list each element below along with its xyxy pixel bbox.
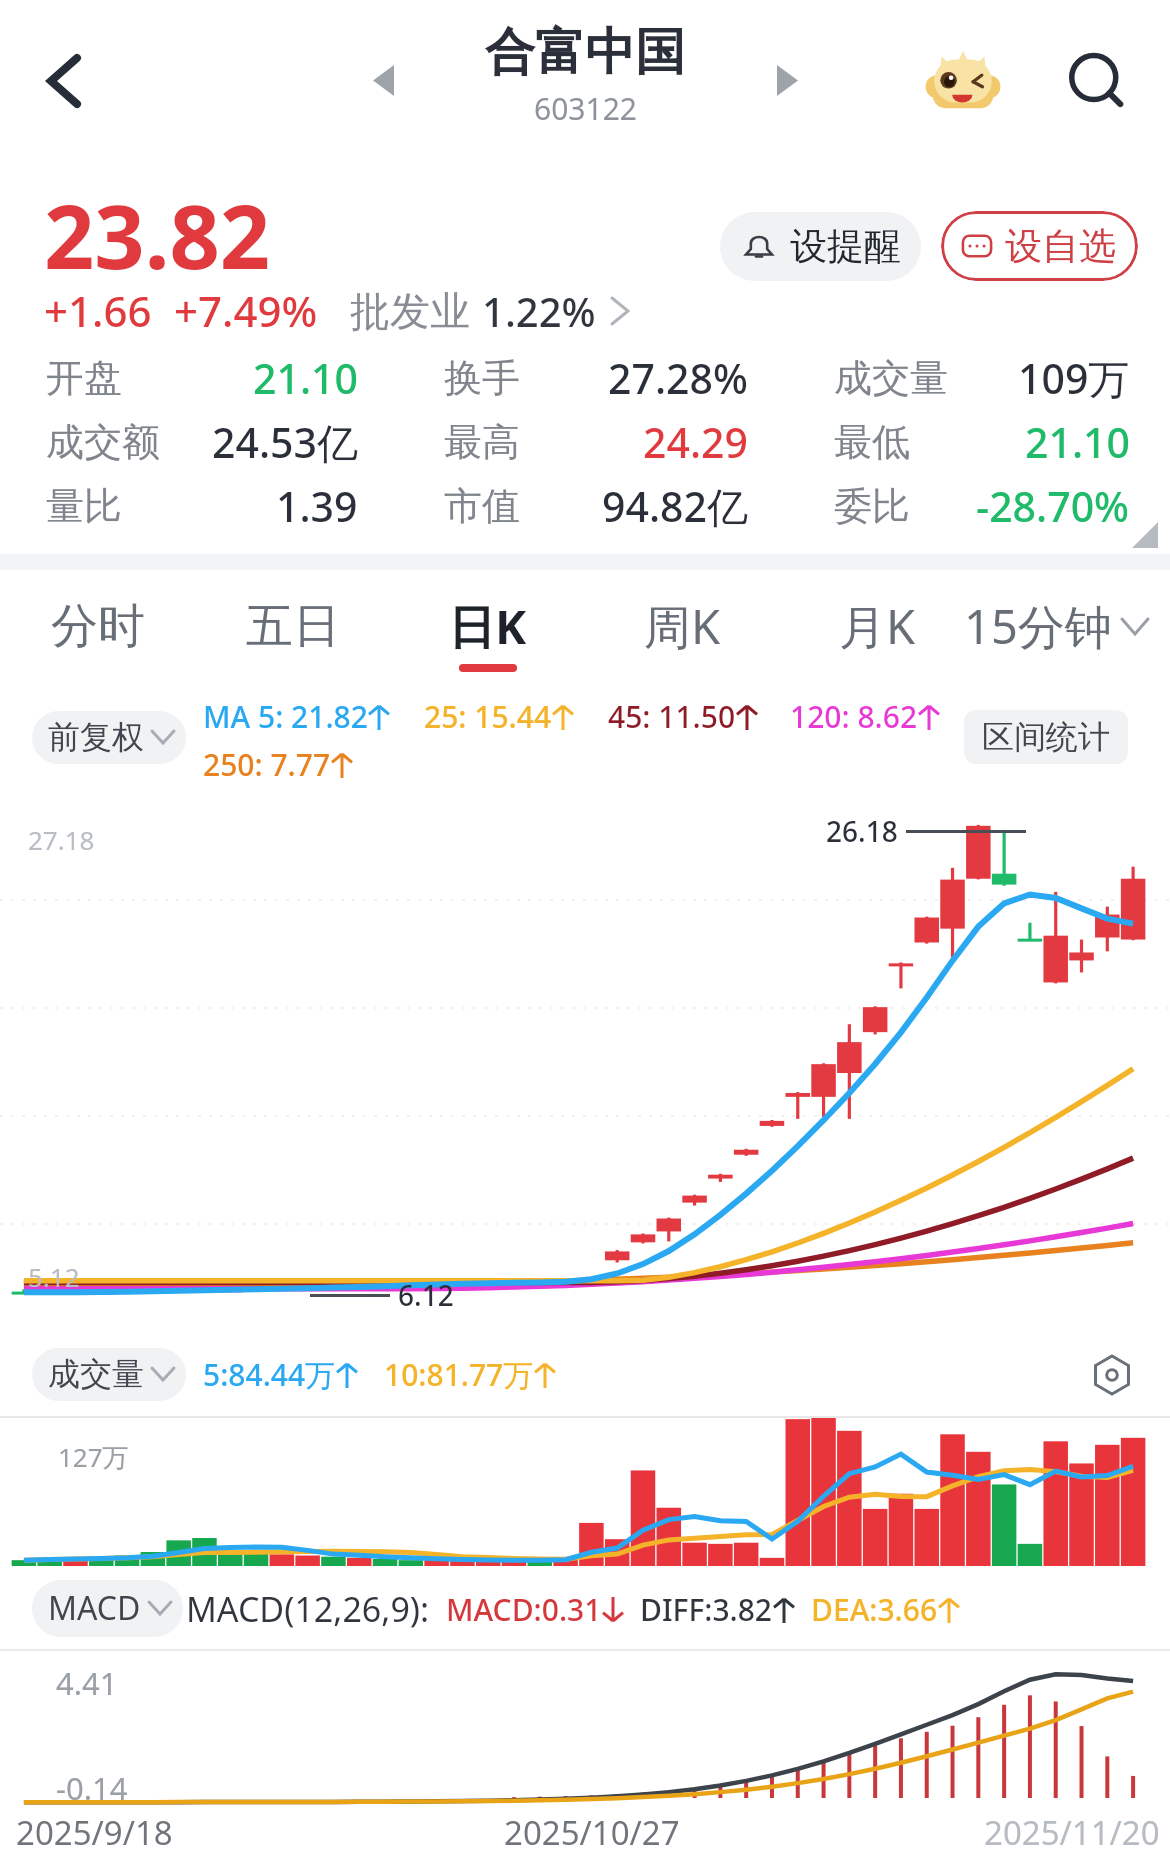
staticText: +7.49%: [174, 282, 318, 339]
button[interactable]: 区间统计: [964, 710, 1128, 764]
staticText: 周K: [644, 594, 721, 658]
staticText: 127万: [58, 1439, 129, 1475]
staticText: 设提醒: [790, 223, 901, 270]
staticText: +1.66: [44, 282, 152, 339]
staticText: 24.29: [643, 414, 748, 470]
button[interactable]: 设提醒: [720, 212, 921, 281]
staticText: 合富中国: [485, 21, 685, 84]
staticText: 开盘: [46, 354, 122, 402]
staticText: DEA:3.66: [811, 1589, 938, 1630]
staticText: 前复权: [48, 717, 144, 757]
staticText: 最高: [444, 418, 520, 466]
staticText: 24.53亿: [212, 414, 358, 470]
staticText: 603122: [534, 88, 637, 129]
staticText: 2025/10/27: [504, 1810, 680, 1855]
button[interactable]: 日K: [390, 570, 585, 682]
staticText: MACD(12,26,9):: [186, 1586, 430, 1632]
staticText: 120: 8.62: [790, 696, 918, 737]
staticText: DIFF:3.82: [640, 1589, 773, 1630]
button[interactable]: 五日: [195, 570, 390, 682]
staticText: 21.10: [1025, 414, 1130, 470]
button[interactable]: 分时: [0, 570, 195, 682]
staticText: 区间统计: [982, 717, 1110, 757]
staticText: 6.12: [398, 1276, 454, 1314]
staticText: 成交额: [46, 418, 160, 466]
staticText: -28.70%: [976, 478, 1130, 534]
staticText: 1.39: [276, 478, 358, 534]
button[interactable]: Previous stock: [355, 52, 411, 108]
staticText: 15分钟: [964, 594, 1112, 658]
staticText: 市值: [444, 482, 520, 530]
staticText: 27.28%: [608, 350, 748, 406]
staticText: 设自选: [1005, 223, 1116, 270]
staticText: 成交量: [834, 354, 948, 402]
staticText: 换手: [444, 354, 520, 402]
button[interactable]: Settings: [1088, 1351, 1136, 1399]
staticText: -0.14: [56, 1767, 128, 1809]
staticText: 最低: [834, 418, 910, 466]
staticText: 2025/9/18: [16, 1810, 173, 1855]
staticText: 5.12: [28, 1259, 80, 1294]
staticText: 委比: [834, 482, 910, 530]
staticText: MA 5: 21.82: [203, 696, 368, 737]
staticText: MACD: [48, 1586, 141, 1630]
staticText: 26.18: [826, 812, 898, 850]
staticText: 45: 11.50: [608, 696, 736, 737]
staticText: 23.82: [44, 175, 271, 295]
staticText: 10:81.77万: [384, 1354, 534, 1395]
staticText: MACD:0.31: [446, 1589, 602, 1630]
button[interactable]: 成交量: [32, 1348, 186, 1401]
button[interactable]: 月K: [780, 570, 975, 682]
staticText: 25: 15.44: [424, 696, 552, 737]
button[interactable]: 周K: [585, 570, 780, 682]
button[interactable]: 前复权: [32, 711, 186, 764]
staticText: 21.10: [253, 350, 358, 406]
staticText: 250: 7.77: [203, 744, 331, 785]
staticText: 5:84.44万: [203, 1354, 336, 1395]
button[interactable]: 设自选: [941, 211, 1138, 281]
staticText: 分时: [51, 597, 145, 656]
staticText: 成交量: [48, 1354, 144, 1394]
staticText: 109万: [1018, 350, 1130, 406]
staticText: 27.18: [28, 822, 95, 857]
staticText: 1.22%: [482, 284, 596, 338]
staticText: 日K: [448, 594, 527, 658]
button[interactable]: Profile: [920, 38, 1006, 124]
button[interactable]: Search: [1056, 42, 1136, 122]
button[interactable]: Next stock: [759, 52, 815, 108]
button[interactable]: Back: [28, 45, 100, 117]
staticText: 量比: [46, 482, 122, 530]
button[interactable]: 15分钟: [964, 594, 1148, 658]
staticText: 94.82亿: [602, 478, 748, 534]
staticText: 月K: [839, 594, 916, 658]
staticText: 五日: [246, 597, 340, 656]
staticText: 2025/11/20: [984, 1810, 1160, 1855]
staticText: 批发业: [350, 286, 470, 336]
button[interactable]: MACD: [32, 1580, 183, 1637]
staticText: 4.41: [56, 1662, 118, 1704]
